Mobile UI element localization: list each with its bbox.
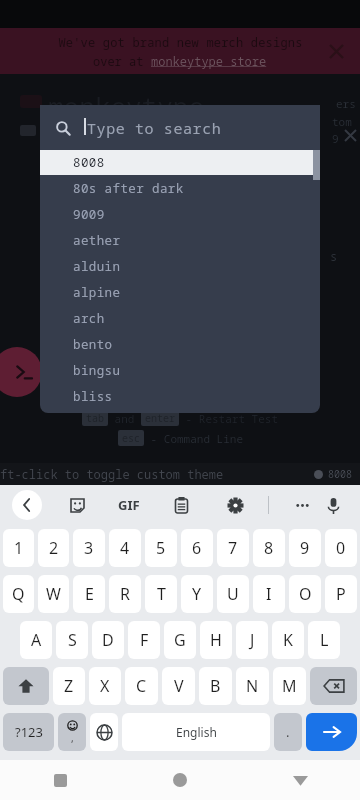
staticText: bingsu <box>73 362 121 379</box>
button[interactable]: Enter <box>306 713 357 751</box>
button[interactable]: Shift <box>3 667 49 705</box>
button[interactable]: Y <box>181 575 213 613</box>
button[interactable]: ?123 <box>3 713 54 751</box>
button[interactable]: L <box>308 621 340 659</box>
button[interactable]: Recent apps <box>0 760 120 800</box>
staticText: We've got brand new merch designs <box>58 34 303 50</box>
button[interactable]: . <box>274 713 302 751</box>
button[interactable]: 9 <box>289 529 321 567</box>
button[interactable]: B <box>199 667 232 705</box>
button[interactable]: Back <box>12 490 42 520</box>
button[interactable]: M <box>273 667 306 705</box>
staticText: GIF <box>118 496 140 514</box>
staticText: C <box>136 675 147 697</box>
button[interactable]: English <box>122 713 270 751</box>
button[interactable]: 8008 <box>314 467 352 481</box>
staticText: M <box>282 675 297 697</box>
button[interactable]: D <box>92 621 124 659</box>
button[interactable]: 8008 <box>40 150 313 175</box>
button[interactable]: R <box>109 575 141 613</box>
staticText: U <box>227 583 239 605</box>
staticText: Q <box>12 583 25 605</box>
button[interactable]: Stickers <box>64 492 90 518</box>
button[interactable]: W <box>38 575 69 613</box>
button[interactable]: Type to search <box>40 105 320 150</box>
button[interactable]: Voice input <box>320 492 346 518</box>
staticText: - Command Line <box>144 431 243 446</box>
button[interactable]: 9009 <box>40 201 320 227</box>
button[interactable]: G <box>164 621 196 659</box>
button[interactable]: 6 <box>181 529 213 567</box>
staticText: R <box>120 583 130 605</box>
button[interactable]: 4 <box>109 529 141 567</box>
staticText: Type to search <box>87 118 222 138</box>
staticText: aether <box>73 232 121 249</box>
button[interactable]: T <box>145 575 177 613</box>
button[interactable]: alduin <box>40 253 320 279</box>
button[interactable]: U <box>217 575 249 613</box>
button[interactable]: F <box>128 621 160 659</box>
button[interactable]: K <box>272 621 304 659</box>
button[interactable]: O <box>289 575 321 613</box>
button[interactable]: Clipboard <box>168 492 194 518</box>
button[interactable]: C <box>125 667 158 705</box>
staticText: ers <box>336 96 356 111</box>
button[interactable]: Close banner <box>322 37 350 65</box>
button[interactable]: Back <box>240 760 360 800</box>
staticText: X <box>100 675 110 697</box>
button[interactable]: X <box>89 667 121 705</box>
button[interactable]: bingsu <box>40 357 320 383</box>
button[interactable]: N <box>236 667 269 705</box>
button[interactable]: Z <box>53 667 85 705</box>
button[interactable]: 1 <box>3 529 34 567</box>
staticText: O <box>299 583 312 605</box>
button[interactable]: Change language <box>90 713 118 751</box>
button[interactable]: J <box>236 621 268 659</box>
button[interactable]: arch <box>40 305 320 331</box>
button[interactable]: 8 <box>253 529 285 567</box>
button[interactable]: Backspace <box>310 667 357 705</box>
staticText: Z <box>64 675 74 697</box>
staticText: . <box>286 723 290 741</box>
button[interactable]: E <box>73 575 105 613</box>
staticText: A <box>31 629 42 651</box>
button[interactable]: Q <box>3 575 34 613</box>
button[interactable]: bento <box>40 331 320 357</box>
staticText: English <box>176 724 217 740</box>
staticText: arch <box>73 310 105 327</box>
button[interactable]: alpine <box>40 279 320 305</box>
button[interactable]: Home <box>120 760 240 800</box>
button[interactable]: 7 <box>217 529 249 567</box>
button[interactable]: Command line <box>0 347 42 397</box>
button[interactable]: GIF <box>118 496 140 514</box>
staticText: W <box>46 583 61 605</box>
staticText: K <box>283 629 293 651</box>
button[interactable]: V <box>162 667 195 705</box>
button[interactable]: I <box>253 575 285 613</box>
button[interactable]: 2 <box>38 529 69 567</box>
button[interactable]: S <box>56 621 88 659</box>
button[interactable]: More options <box>289 492 315 518</box>
staticText: V <box>174 675 184 697</box>
button[interactable]: Settings <box>222 492 248 518</box>
button[interactable]: 3 <box>73 529 105 567</box>
staticText: Y <box>192 583 202 605</box>
button[interactable]: monkeytype store <box>151 53 267 69</box>
staticText: 80s after dark <box>73 180 184 197</box>
button[interactable]: Emoji and comma <box>58 713 86 751</box>
staticText: G <box>174 629 186 651</box>
button[interactable]: aether <box>40 227 320 253</box>
button[interactable]: 5 <box>145 529 177 567</box>
button[interactable]: P <box>325 575 357 613</box>
button[interactable]: bliss <box>40 383 320 409</box>
staticText: 9 <box>332 131 339 146</box>
button[interactable]: 0 <box>325 529 357 567</box>
staticText: , <box>71 731 74 745</box>
staticText: N <box>246 675 259 697</box>
button[interactable]: A <box>20 621 52 659</box>
staticText: tab <box>86 411 104 425</box>
staticText: alpine <box>73 284 121 301</box>
button[interactable]: H <box>200 621 232 659</box>
button[interactable]: 80s after dark <box>40 175 320 201</box>
staticText: 9009 <box>73 206 105 223</box>
